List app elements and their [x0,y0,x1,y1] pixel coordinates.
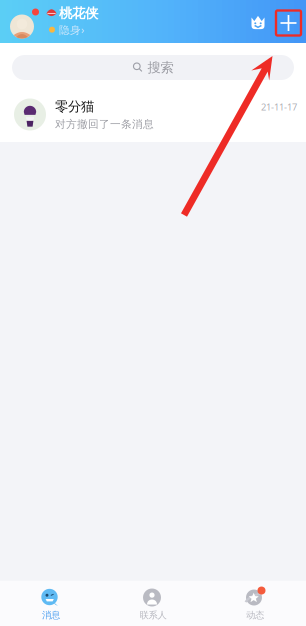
button[interactable]: 消息 [0,580,102,626]
staticText: 动态 [246,609,264,621]
button[interactable]: Search [12,55,294,80]
button[interactable]: Profile [10,0,39,43]
button[interactable]: 动态 [204,580,306,626]
staticText: 搜索 [147,59,173,76]
button[interactable]: Online status [46,23,84,37]
staticText: 对方撤回了一条消息 [55,118,154,131]
staticText: 零分猫 [55,98,94,115]
button[interactable]: VIP [246,8,270,34]
staticText: 消息 [42,609,60,621]
staticText: 桃花侠 [59,5,98,22]
button[interactable]: 联系人 [102,580,204,626]
button[interactable]: Add [276,7,301,35]
staticText: 隐身› [59,23,84,37]
button[interactable]: 零分猫 [0,87,306,142]
staticText: 联系人 [139,609,166,621]
staticText: 21-11-17 [261,101,297,113]
